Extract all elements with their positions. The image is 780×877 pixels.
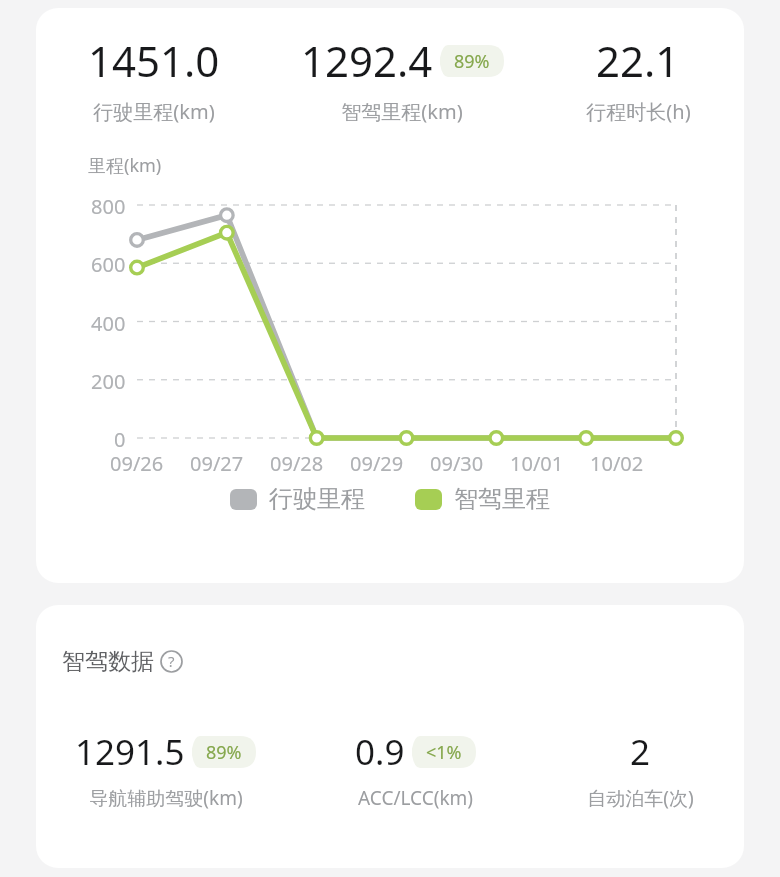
staticText: 09/27: [190, 450, 244, 477]
staticText: 行驶里程(km): [93, 98, 215, 125]
staticText: 导航辅助驾驶(km): [89, 785, 243, 811]
staticText: 1291.5: [75, 728, 185, 776]
staticText: <1%: [426, 740, 462, 765]
button[interactable]: 22.1: [532, 32, 744, 125]
staticText: 行程时长(h): [586, 98, 691, 125]
staticText: 1451.0: [88, 32, 220, 89]
staticText: 09/28: [270, 450, 324, 477]
button[interactable]: 帮助: [160, 650, 183, 673]
staticText: 800: [91, 193, 126, 220]
button[interactable]: 行驶里程: [230, 484, 365, 514]
staticText: 89%: [206, 740, 242, 765]
staticText: 智驾里程(km): [341, 98, 463, 125]
staticText: 1292.4: [301, 32, 433, 89]
staticText: 09/26: [110, 450, 164, 477]
staticText: 10/02: [590, 450, 644, 477]
staticText: ACC/LCC(km): [358, 785, 473, 811]
staticText: 里程(km): [88, 153, 162, 178]
staticText: 22.1: [596, 32, 680, 89]
button[interactable]: 1292.4: [272, 32, 532, 125]
button[interactable]: 1451.0: [36, 32, 272, 125]
button[interactable]: 1291.5: [36, 728, 295, 811]
staticText: 200: [91, 368, 126, 395]
staticText: 自动泊车(次): [587, 785, 694, 811]
staticText: 2: [630, 728, 651, 776]
button[interactable]: 智驾数据: [62, 647, 183, 676]
staticText: 400: [91, 310, 126, 337]
staticText: 智驾里程: [454, 484, 550, 514]
staticText: 89%: [454, 49, 490, 74]
staticText: 600: [91, 251, 126, 278]
staticText: 09/30: [430, 450, 484, 477]
staticText: 10/01: [510, 450, 564, 477]
staticText: ?: [168, 651, 175, 671]
staticText: 09/29: [350, 450, 404, 477]
button[interactable]: 智驾里程: [415, 484, 550, 514]
button[interactable]: 0.9: [295, 728, 536, 811]
staticText: 0.9: [355, 728, 405, 776]
staticText: 智驾数据: [62, 647, 154, 676]
button[interactable]: 2: [536, 728, 744, 811]
staticText: 0: [114, 426, 126, 453]
staticText: 行驶里程: [269, 484, 365, 514]
